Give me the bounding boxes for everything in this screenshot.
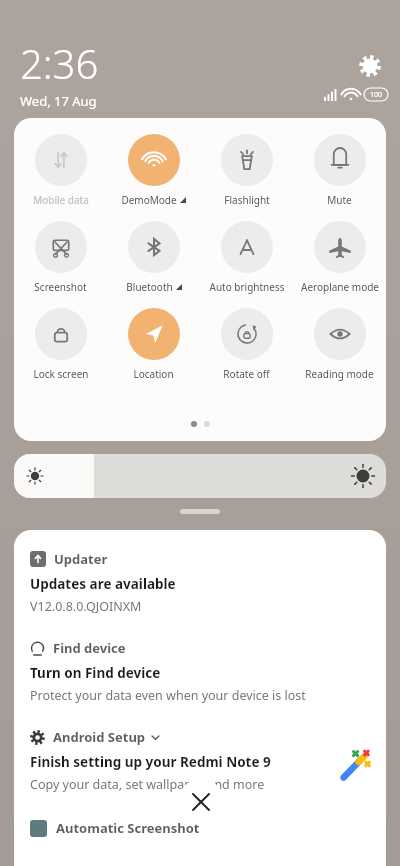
staticText: Protect your data even when your device … xyxy=(30,687,306,704)
button[interactable]: Mobile data xyxy=(14,134,107,207)
button[interactable]: Location xyxy=(107,308,200,381)
button[interactable]: Rotate off xyxy=(200,308,293,381)
button[interactable]: Automatic Screenshot xyxy=(30,819,386,837)
staticText: Flashlight xyxy=(224,193,270,207)
button[interactable]: Settings xyxy=(354,50,386,82)
button[interactable]: Lock screen xyxy=(14,308,107,381)
staticText: Android Setup xyxy=(53,728,146,746)
button[interactable]: DemoMode xyxy=(107,134,200,207)
button[interactable]: Flashlight xyxy=(200,134,293,207)
button[interactable]: Close xyxy=(178,779,224,825)
button[interactable]: Updater xyxy=(14,550,386,615)
staticText: Find device xyxy=(53,639,126,657)
button[interactable]: Mute xyxy=(293,134,386,207)
staticText: V12.0.8.0.QJOINXM xyxy=(30,598,142,615)
staticText: Lock screen xyxy=(33,367,89,381)
staticText: 2:36 xyxy=(20,36,99,90)
staticText: Auto brightness xyxy=(209,280,285,294)
staticText: Turn on Find device xyxy=(30,664,161,682)
staticText: Mute xyxy=(327,193,352,207)
button[interactable]: Reading mode xyxy=(293,308,386,381)
button[interactable]: Bluetooth xyxy=(107,221,200,294)
staticText: Location xyxy=(133,367,174,381)
staticText: Updater xyxy=(54,550,108,568)
button[interactable]: Aeroplane mode xyxy=(293,221,386,294)
button[interactable]: Auto brightness xyxy=(200,221,293,294)
staticText: Copy your data, set wallpaper and more xyxy=(30,776,265,793)
staticText: DemoMode xyxy=(121,193,177,207)
staticText: Finish setting up your Redmi Note 9 xyxy=(30,753,271,771)
staticText: Updates are available xyxy=(30,575,176,593)
button[interactable]: Screenshot xyxy=(14,221,107,294)
button[interactable]: Find device xyxy=(14,639,386,704)
staticText: Wed, 17 Aug xyxy=(20,92,97,110)
staticText: Automatic Screenshot xyxy=(56,819,200,837)
staticText: Aeroplane mode xyxy=(301,280,379,294)
staticText: Screenshot xyxy=(34,280,87,294)
button[interactable]: Brightness xyxy=(14,454,386,498)
staticText: Rotate off xyxy=(223,367,270,381)
staticText: 100 xyxy=(370,90,383,100)
staticText: Reading mode xyxy=(305,367,374,381)
button[interactable]: Android Setup xyxy=(14,728,386,793)
staticText: Bluetooth xyxy=(126,280,173,294)
staticText: Mobile data xyxy=(33,193,89,207)
